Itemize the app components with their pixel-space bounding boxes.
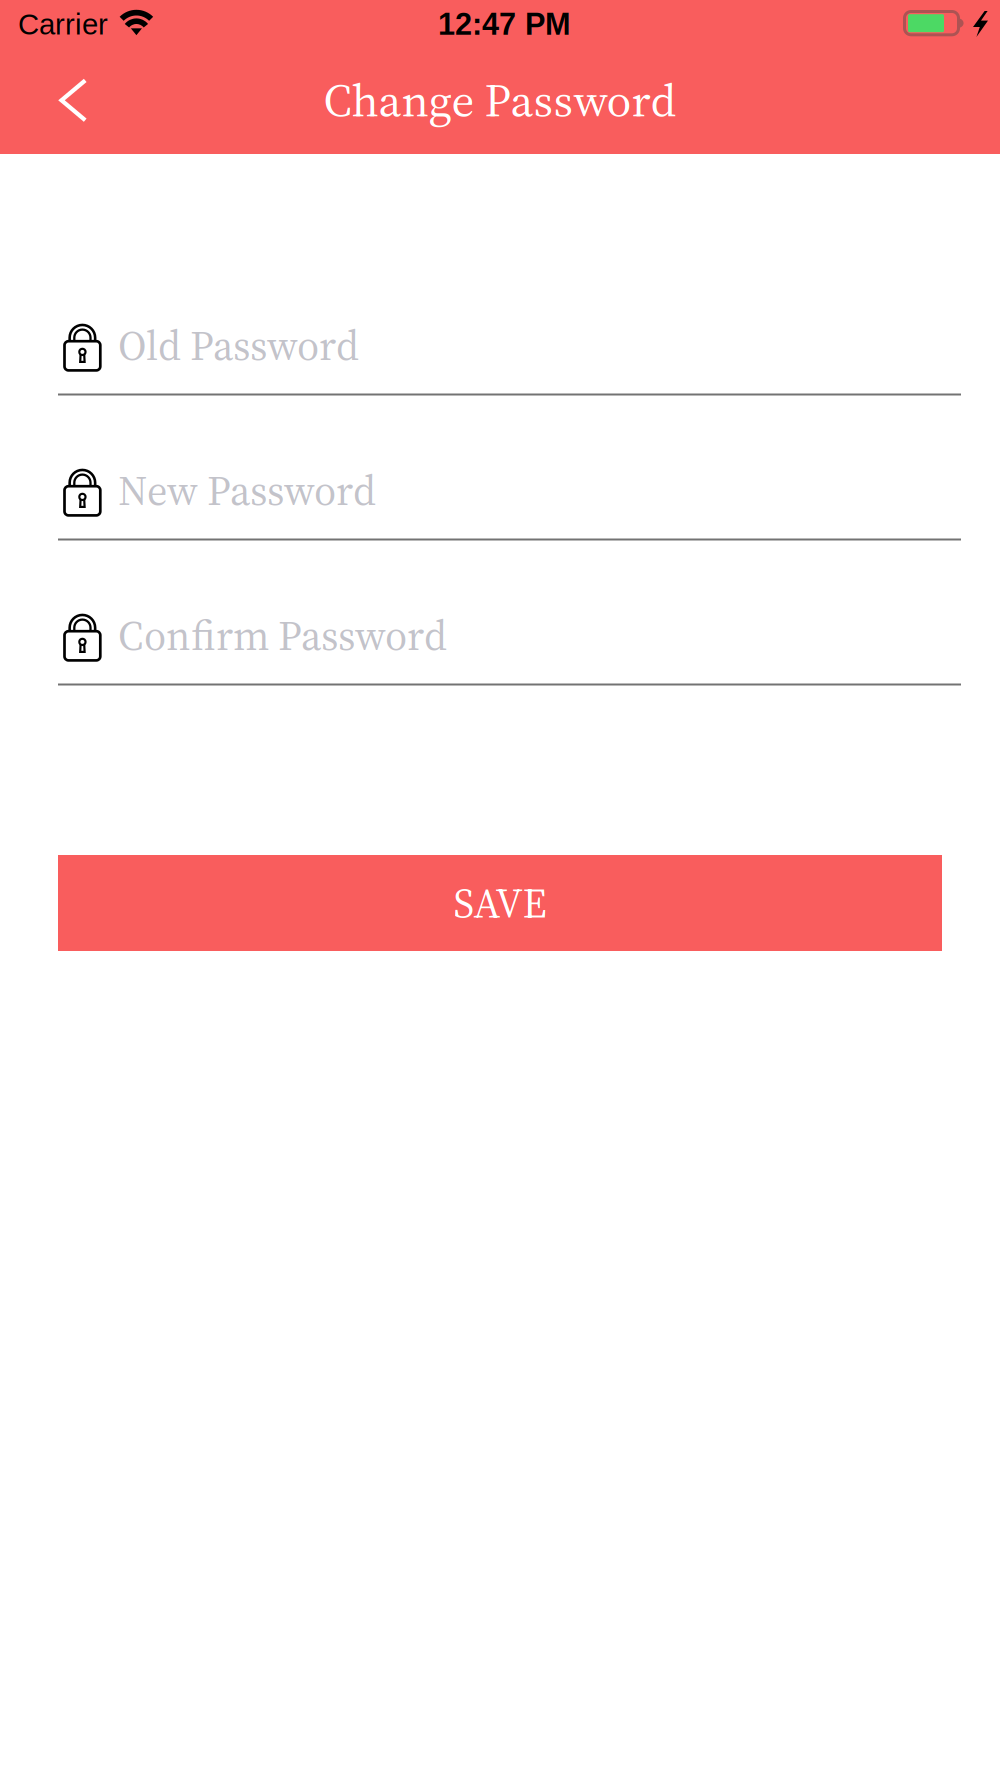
staticText: New Password [118,462,376,519]
button[interactable]: Confirm Password [58,603,961,685]
button[interactable]: Old Password [58,313,961,395]
staticText: 12:47 PM [438,7,571,41]
staticText: Carrier [18,8,108,41]
staticText: Change Password [323,68,676,132]
staticText: Confirm Password [118,607,447,664]
staticText: SAVE [453,875,546,931]
staticText: Old Password [118,317,359,374]
button[interactable]: New Password [58,458,961,540]
button[interactable]: SAVE [58,855,942,951]
button[interactable]: Back [40,76,130,136]
